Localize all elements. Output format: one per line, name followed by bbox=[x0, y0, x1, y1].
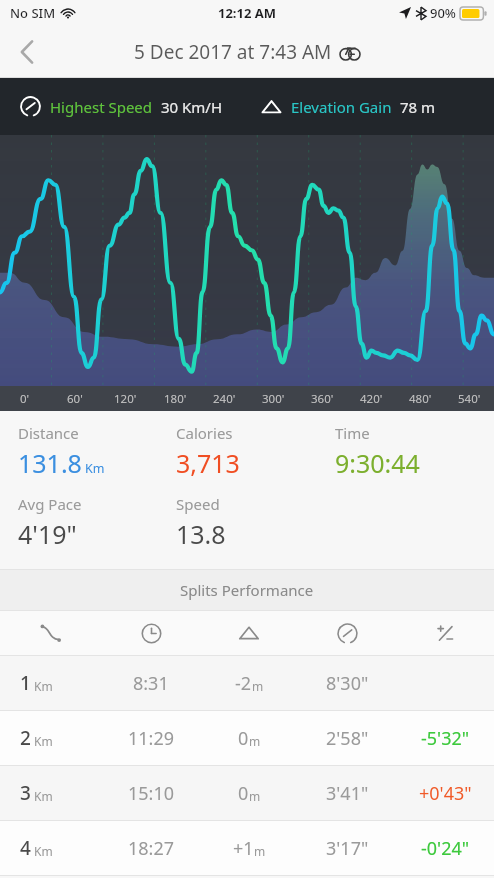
staticText: m bbox=[252, 678, 264, 694]
staticText: 30 Km/H bbox=[161, 97, 223, 117]
staticText: 300' bbox=[262, 391, 285, 407]
staticText: 3,713 bbox=[176, 446, 240, 480]
staticText: 3'41" bbox=[326, 781, 369, 806]
staticText: 15:10 bbox=[128, 781, 175, 806]
staticText: Km bbox=[34, 788, 53, 804]
staticText: Km bbox=[34, 678, 53, 694]
staticText: No SIM bbox=[10, 4, 56, 22]
button[interactable]: Back bbox=[0, 26, 54, 78]
staticText: 0' bbox=[20, 391, 30, 407]
staticText: 13.8 bbox=[176, 517, 226, 551]
staticText: 78 m bbox=[400, 97, 436, 117]
staticText: Avg Pace bbox=[18, 494, 82, 514]
staticText: 2'58" bbox=[326, 726, 369, 751]
staticText: 360' bbox=[311, 391, 334, 407]
staticText: Time bbox=[335, 423, 370, 443]
staticText: 8'30" bbox=[326, 671, 369, 696]
staticText: +0'43" bbox=[419, 781, 472, 806]
staticText: Distance bbox=[18, 423, 79, 443]
staticText: Km bbox=[34, 843, 53, 859]
staticText: 3 bbox=[20, 780, 31, 806]
staticText: 420' bbox=[360, 391, 383, 407]
staticText: 12:12 AM bbox=[218, 4, 277, 22]
staticText: -5'32" bbox=[421, 726, 470, 751]
staticText: 60' bbox=[67, 391, 83, 407]
staticText: 4'19" bbox=[18, 517, 77, 551]
staticText: 11:29 bbox=[128, 726, 175, 751]
staticText: 1 bbox=[20, 670, 31, 696]
staticText: 4 bbox=[20, 835, 31, 861]
staticText: m bbox=[249, 733, 261, 749]
staticText: 18:27 bbox=[128, 836, 175, 861]
staticText: 0 bbox=[238, 781, 249, 806]
staticText: 480' bbox=[409, 391, 432, 407]
staticText: -2 bbox=[235, 671, 252, 696]
staticText: Splits Performance bbox=[180, 580, 314, 600]
staticText: Km bbox=[85, 460, 105, 477]
staticText: 3'17" bbox=[326, 836, 369, 861]
staticText: m bbox=[249, 788, 261, 804]
button[interactable]: 2 bbox=[0, 711, 494, 765]
staticText: +1 bbox=[233, 836, 254, 861]
staticText: -0'24" bbox=[421, 836, 470, 861]
staticText: Highest Speed bbox=[50, 97, 153, 117]
staticText: 8:31 bbox=[133, 671, 169, 696]
staticText: 0 bbox=[238, 726, 249, 751]
button[interactable]: 3 bbox=[0, 766, 494, 820]
staticText: 2 bbox=[20, 725, 31, 751]
staticText: 240' bbox=[213, 391, 236, 407]
staticText: 90% bbox=[430, 4, 456, 22]
staticText: 540' bbox=[458, 391, 481, 407]
staticText: 180' bbox=[164, 391, 187, 407]
staticText: Speed bbox=[176, 494, 220, 514]
staticText: 120' bbox=[114, 391, 137, 407]
button[interactable]: 1 bbox=[0, 656, 494, 710]
button[interactable]: 4 bbox=[0, 821, 494, 875]
staticText: 5 Dec 2017 at 7:43 AM bbox=[134, 39, 332, 65]
staticText: Elevation Gain bbox=[291, 97, 392, 117]
staticText: 9:30:44 bbox=[335, 446, 420, 480]
staticText: Km bbox=[34, 733, 53, 749]
staticText: 131.8 bbox=[18, 446, 82, 480]
staticText: Calories bbox=[176, 423, 233, 443]
staticText: m bbox=[254, 843, 266, 859]
